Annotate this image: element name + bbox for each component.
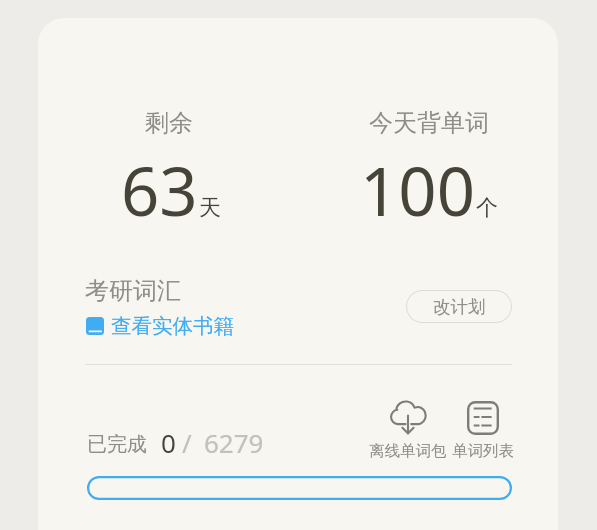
staticText: 100 — [360, 144, 475, 235]
button[interactable]: 离线单词包 — [368, 399, 447, 461]
staticText: 考研词汇 — [85, 276, 181, 306]
staticText: 今天背单词 — [369, 108, 489, 138]
staticText: 单词列表 — [452, 441, 514, 461]
staticText: 改计划 — [433, 296, 486, 318]
staticText: 6279 — [204, 425, 264, 460]
staticText: 剩余 — [145, 108, 193, 138]
staticText: / — [182, 425, 192, 460]
staticText: 个 — [476, 194, 498, 222]
staticText: 63 — [121, 144, 198, 235]
staticText: 天 — [199, 194, 221, 222]
staticText: 0 — [161, 425, 176, 460]
staticText: 已完成 — [87, 432, 147, 457]
button[interactable]: 改计划 — [407, 291, 511, 322]
button[interactable]: 学习进度 — [87, 476, 512, 500]
staticText: 查看实体书籍 — [111, 313, 234, 339]
button[interactable]: 查看实体书籍 — [86, 311, 234, 341]
button[interactable]: 单词列表 — [451, 399, 515, 461]
staticText: 离线单词包 — [369, 441, 447, 461]
